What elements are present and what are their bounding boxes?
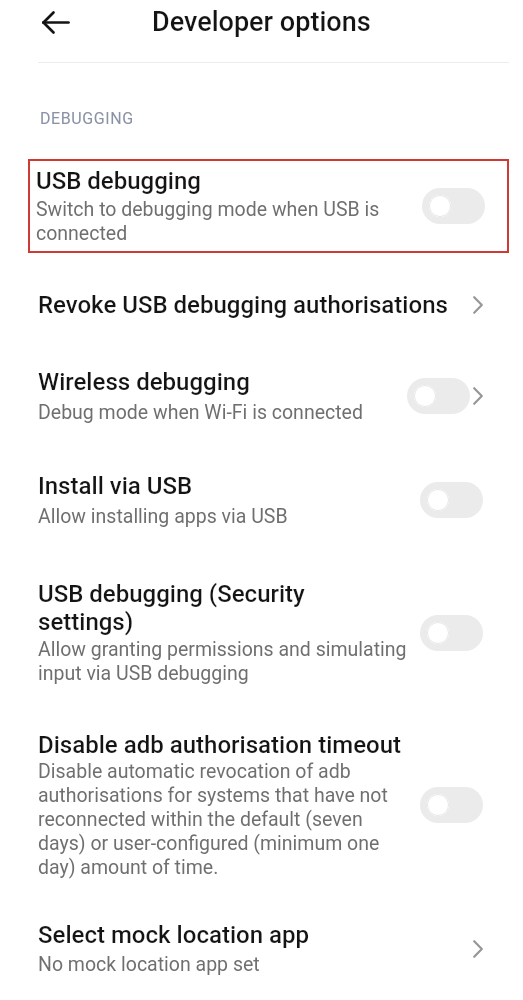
button[interactable]: Select mock location app [38,921,483,976]
staticText: Select mock location app [38,921,310,949]
button[interactable]: USB debugging [28,159,509,253]
staticText: Developer options [152,6,371,38]
button[interactable] [42,12,70,33]
button[interactable]: Revoke USB debugging authorisations [38,291,483,319]
staticText: Disable adb authorisation timeout [38,731,402,759]
staticText: Install via USB [38,472,193,500]
staticText: USB debugging (Security settings) [38,580,305,636]
staticText: USB debugging [36,167,201,195]
button[interactable] [422,188,485,224]
staticText: Debug mode when Wi-Fi is connected [38,401,363,424]
button[interactable]: Disable adb authorisation timeout [38,731,483,879]
staticText: Revoke USB debugging authorisations [38,291,448,319]
button[interactable] [407,378,470,414]
staticText: No mock location app set [38,953,260,976]
staticText: Disable automatic revocation of adb auth… [38,760,388,879]
button[interactable] [420,615,483,651]
button[interactable] [420,482,483,518]
staticText: Wireless debugging [38,368,250,396]
staticText: DEBUGGING [40,109,134,128]
button[interactable] [420,787,483,823]
button[interactable]: Wireless debugging [38,368,483,424]
button[interactable]: USB debugging (Security settings) [38,580,483,685]
staticText: Allow granting permissions and simulatin… [38,638,407,685]
staticText: Allow installing apps via USB [38,505,288,528]
staticText: Switch to debugging mode when USB is con… [36,198,380,245]
button[interactable]: Install via USB [38,472,483,528]
